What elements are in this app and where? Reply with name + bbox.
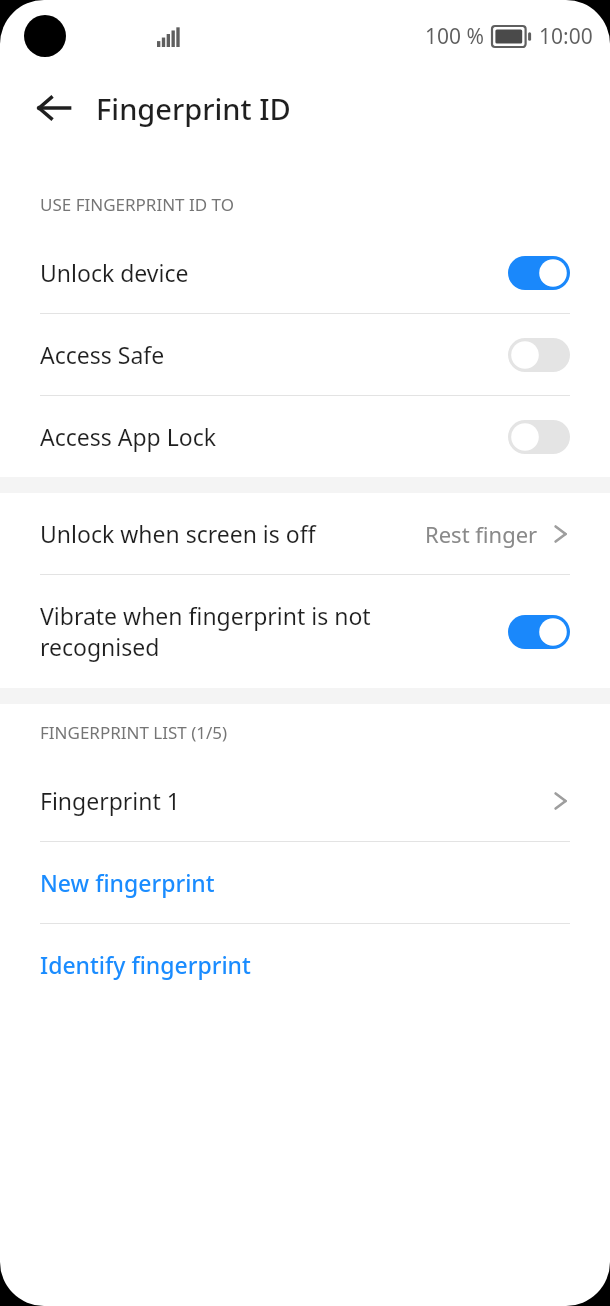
staticText: New fingerprint	[40, 867, 215, 898]
button[interactable]: Unlock when screen is off	[0, 493, 610, 574]
button[interactable]: Off	[508, 420, 570, 454]
button[interactable]: Access App Lock	[0, 396, 610, 477]
staticText: Fingerprint ID	[96, 89, 291, 128]
staticText: Vibrate when fingerprint is not recognis…	[40, 600, 414, 663]
staticText: 100 %	[425, 22, 484, 51]
staticText: Access App Lock	[40, 421, 508, 452]
button[interactable]: On	[508, 256, 570, 290]
button[interactable]: Access Safe	[0, 314, 610, 395]
staticText: Access Safe	[40, 339, 508, 370]
button[interactable]: New fingerprint	[0, 842, 610, 923]
button[interactable]: Identify fingerprint	[0, 924, 610, 1005]
button[interactable]: Vibrate when fingerprint is not recognis…	[0, 575, 610, 688]
staticText: Unlock device	[40, 257, 508, 288]
staticText: Rest finger	[425, 519, 538, 549]
staticText: Unlock when screen is off	[40, 518, 425, 549]
button[interactable]: Unlock device	[0, 232, 610, 313]
button[interactable]: On	[508, 615, 570, 649]
staticText: 10:00	[539, 22, 593, 51]
staticText: FINGERPRINT LIST (1/5)	[40, 721, 228, 744]
button[interactable]: Fingerprint 1	[0, 760, 610, 841]
staticText: Fingerprint 1	[40, 785, 550, 816]
staticText: Identify fingerprint	[40, 949, 251, 980]
button[interactable]: Off	[508, 338, 570, 372]
button[interactable]: Back	[26, 80, 82, 136]
staticText: USE FINGERPRINT ID TO	[40, 193, 234, 216]
